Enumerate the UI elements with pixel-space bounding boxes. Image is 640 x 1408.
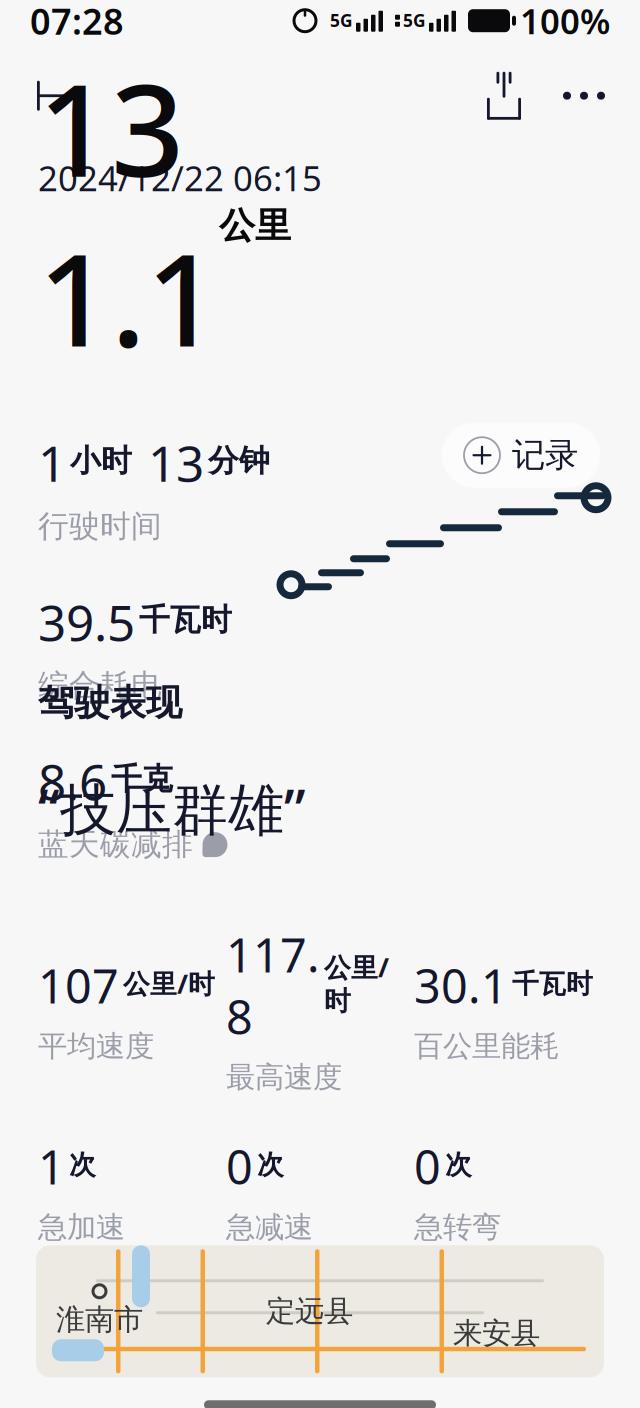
staticText: 2024/12/22 06:15 [38,155,322,201]
staticText: 100% [520,0,610,44]
staticText: 117.8 [226,923,320,1047]
button[interactable]: Back [16,57,96,135]
staticText: 5G [403,9,426,32]
button[interactable]: Route map [0,1245,640,1377]
staticText: 急转弯 [414,1209,501,1245]
staticText: 淮南市 [56,1302,143,1338]
staticText: 公里 [219,204,291,248]
staticText: 急加速 [38,1209,125,1245]
staticText: 驾驶表现 [38,681,182,725]
staticText: 8.6 [38,748,107,814]
staticText: 千瓦时 [512,967,593,1000]
staticText: 公里/时 [123,966,215,1001]
staticText: 记录 [512,435,578,476]
staticText: 平均速度 [38,1028,154,1064]
staticText: 107 [38,954,119,1016]
button[interactable]: Share [464,57,544,135]
staticText: 07:28 [30,0,124,45]
staticText: 千克 [111,760,173,798]
staticText: 行驶时间 [38,507,162,545]
staticText: 次 [445,1148,472,1181]
staticText: 次 [257,1148,284,1181]
staticText: 30.1 [414,954,508,1016]
staticText: 131.1 [38,42,219,382]
staticText: 0 [414,1135,441,1197]
staticText: 次 [69,1148,96,1181]
staticText: 0 [226,1135,253,1197]
staticText: 最高速度 [226,1059,342,1095]
staticText: 13 [148,430,204,495]
staticText: “技压群雄” [38,771,306,845]
staticText: 蓝天碳减排 [38,826,193,863]
button[interactable]: 记录 [442,423,600,488]
staticText: 小时 [70,442,132,480]
staticText: 分钟 [208,442,270,480]
staticText: 急减速 [226,1209,313,1245]
staticText: 来安县 [453,1315,540,1351]
staticText: 定远县 [266,1293,353,1329]
staticText: 公里/时 [324,949,389,1017]
staticText: 综合耗电 [38,667,162,704]
staticText: 1 [38,430,66,495]
staticText: 1 [38,1135,65,1197]
staticText: 5G [330,9,353,32]
staticText: 39.5 [38,589,135,655]
button[interactable]: More options [544,57,624,135]
staticText: 千瓦时 [139,601,232,639]
staticText: 百公里能耗 [414,1028,559,1064]
